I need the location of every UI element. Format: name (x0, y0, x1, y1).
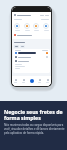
button[interactable]: Filtro (20, 45, 25, 48)
button[interactable]: Atalho (14, 23, 20, 31)
staticText: Negocie seus fretes de forma simples (4, 108, 65, 122)
button[interactable]: Atalho (43, 23, 49, 31)
button[interactable]: Aba (22, 79, 25, 83)
button[interactable]: Aba (38, 79, 41, 83)
button[interactable] (13, 49, 50, 73)
button[interactable]: Perfil (14, 14, 49, 16)
staticText: Nós reunimos todas as cargas disponíveis… (4, 123, 65, 135)
button[interactable]: Aba (46, 79, 49, 83)
button[interactable]: Filtro ativo (14, 45, 19, 48)
button[interactable]: Atalho (24, 23, 30, 31)
button[interactable]: Aba (14, 79, 17, 83)
button[interactable]: Aviso (14, 34, 49, 36)
button[interactable]: Início (30, 79, 34, 83)
button[interactable]: Atalho (33, 23, 39, 31)
